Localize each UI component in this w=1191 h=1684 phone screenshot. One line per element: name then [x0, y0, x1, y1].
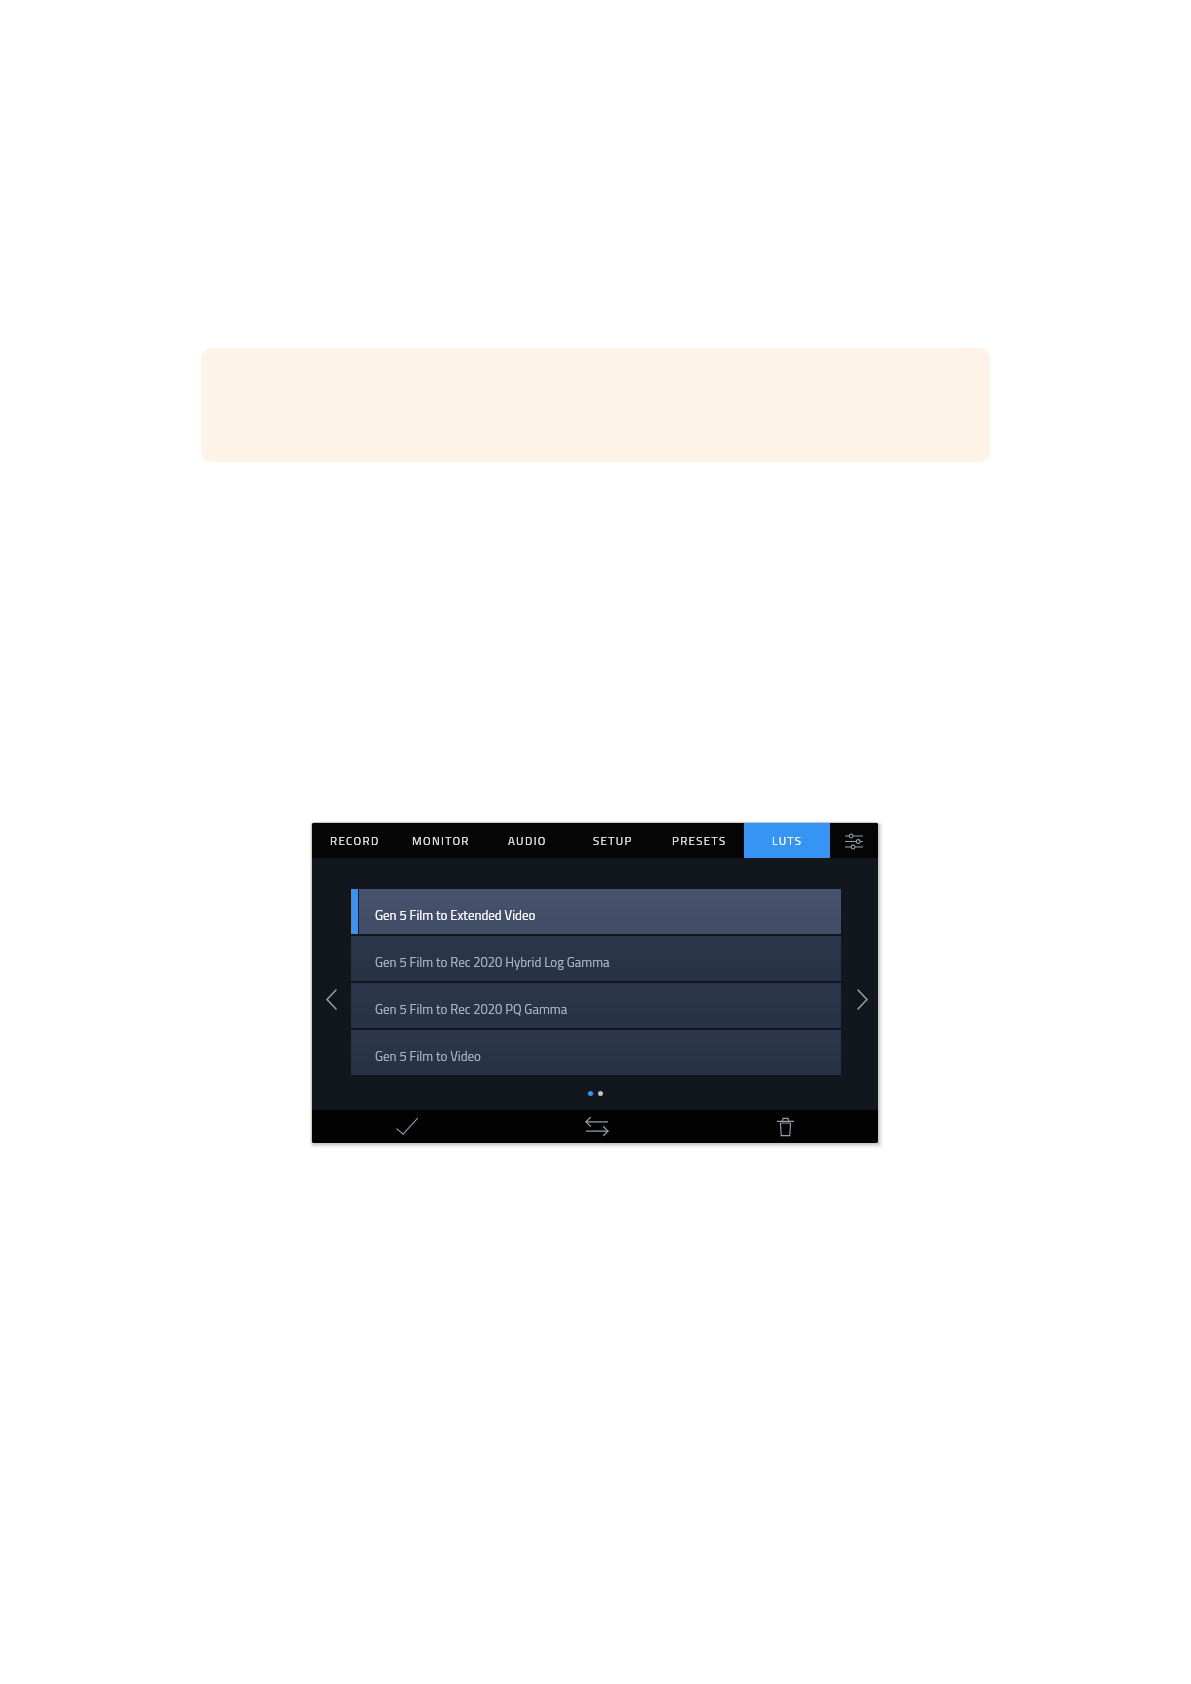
staticText: Gen 5 Film to Rec 2020 PQ Gamma — [375, 999, 568, 1019]
button[interactable]: Swap — [500, 1110, 689, 1143]
button[interactable]: Previous page — [320, 988, 342, 1010]
button[interactable]: Apply — [312, 1110, 500, 1143]
staticText: SETUP — [593, 832, 633, 849]
staticText: Gen 5 Film to Rec 2020 Hybrid Log Gamma — [375, 952, 610, 972]
staticText: RECORD — [330, 832, 380, 849]
staticText: LUTS — [772, 832, 803, 849]
button[interactable]: Gen 5 Film to Video — [351, 1030, 841, 1075]
button[interactable]: RECORD — [312, 823, 398, 858]
staticText: Gen 5 Film to Extended Video — [375, 905, 536, 925]
staticText: AUDIO — [508, 832, 547, 849]
button[interactable]: PRESETS — [656, 823, 742, 858]
staticText: MONITOR — [412, 832, 470, 849]
button[interactable]: Gen 5 Film to Rec 2020 PQ Gamma — [351, 983, 841, 1028]
button[interactable]: SETUP — [570, 823, 656, 858]
button[interactable]: Delete — [689, 1110, 878, 1143]
staticText: Gen 5 Film to Video — [375, 1046, 481, 1066]
button[interactable]: AUDIO — [484, 823, 570, 858]
button[interactable]: Gen 5 Film to Extended Video — [351, 889, 841, 934]
button[interactable]: Next page — [851, 988, 873, 1010]
button[interactable]: Settings — [830, 823, 878, 858]
button[interactable]: MONITOR — [398, 823, 484, 858]
button[interactable]: Gen 5 Film to Rec 2020 Hybrid Log Gamma — [351, 936, 841, 981]
staticText: PRESETS — [672, 832, 727, 849]
button[interactable]: LUTS — [744, 823, 830, 858]
